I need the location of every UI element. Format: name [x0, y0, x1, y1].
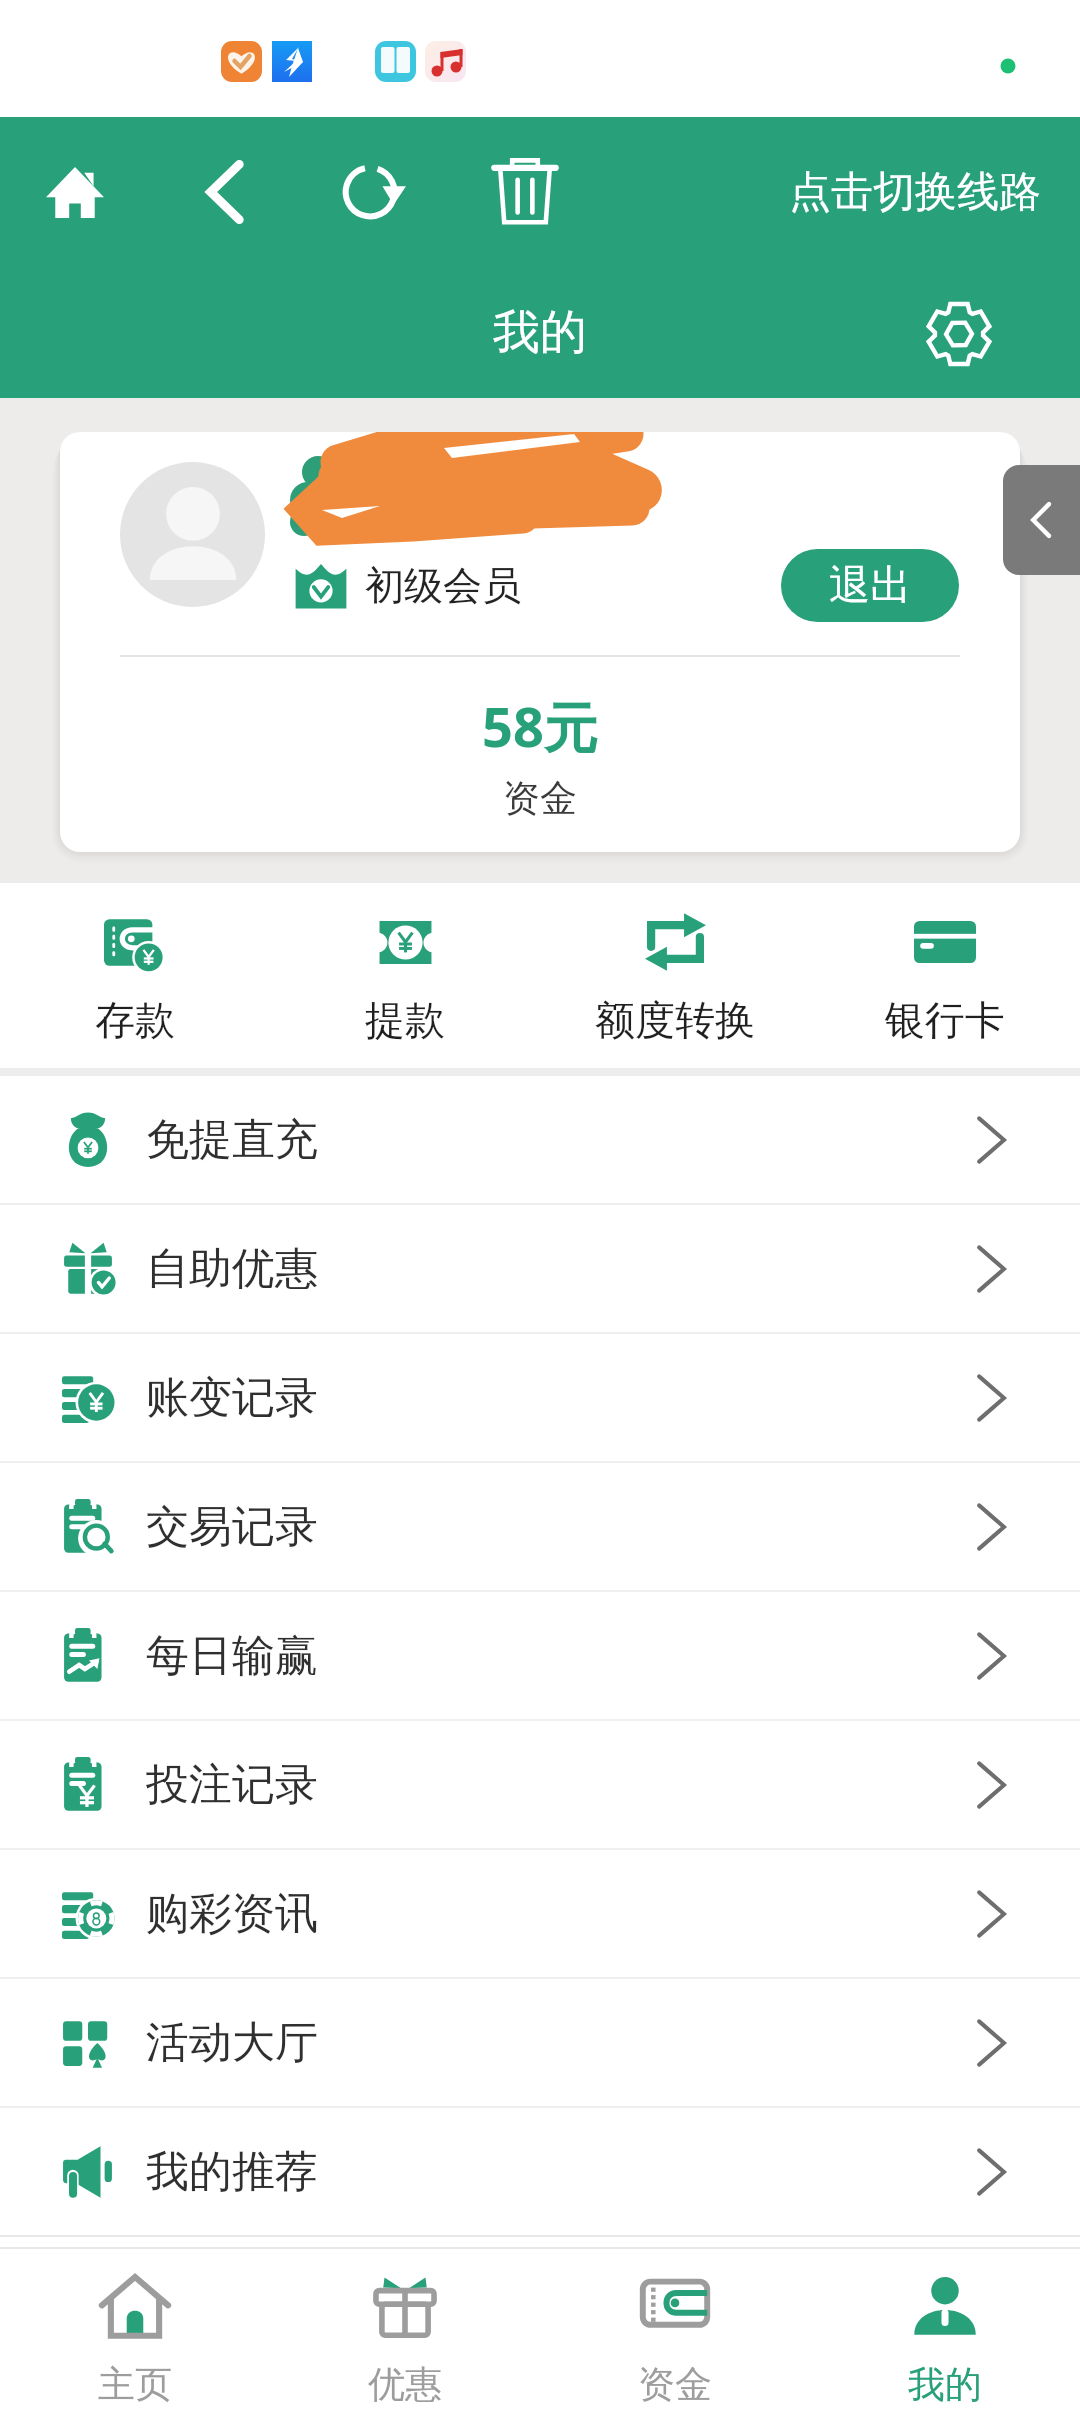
button[interactable]: 我的推荐 [0, 2108, 1080, 2235]
button[interactable]: 账变记录 [0, 1334, 1080, 1461]
button[interactable]: Home [26, 128, 124, 256]
button[interactable]: 我的 [810, 2249, 1080, 2412]
staticText: 每日输赢 [146, 1629, 318, 1683]
staticText: 提款 [365, 995, 445, 1045]
button[interactable]: Collapse [1003, 465, 1080, 575]
staticText: 主页 [98, 2361, 172, 2408]
button[interactable]: 交易记录 [0, 1463, 1080, 1590]
button[interactable]: Back [185, 125, 265, 259]
staticText: 额度转换 [595, 995, 755, 1045]
staticText: 资金 [638, 2361, 712, 2408]
button[interactable]: 退出 [781, 549, 959, 622]
staticText: 活动大厅 [146, 2016, 318, 2070]
button[interactable]: Refresh [315, 127, 435, 257]
button[interactable]: 优惠 [270, 2249, 540, 2412]
staticText: 购彩资讯 [146, 1887, 318, 1941]
staticText: 点击切换线路 [789, 166, 1041, 219]
staticText: 初级会员 [365, 561, 521, 610]
button[interactable]: 额度转换 [540, 883, 810, 1068]
button[interactable]: 存款 [0, 883, 270, 1068]
staticText: 交易记录 [146, 1500, 318, 1554]
button[interactable]: 资金 [540, 2249, 810, 2412]
staticText: 免提直充 [146, 1113, 318, 1167]
staticText: 自助优惠 [146, 1242, 318, 1296]
staticText: 投注记录 [146, 1758, 318, 1812]
staticText: 银行卡 [885, 995, 1005, 1045]
button[interactable]: 购彩资讯 [0, 1850, 1080, 1977]
staticText: 资金 [503, 775, 577, 822]
staticText: 账变记录 [146, 1371, 318, 1425]
staticText: 58元 [482, 689, 598, 763]
button[interactable]: 每日输赢 [0, 1592, 1080, 1719]
button[interactable]: 银行卡 [810, 883, 1080, 1068]
staticText: 存款 [95, 995, 175, 1045]
staticText: 优惠 [368, 2361, 442, 2408]
button[interactable]: 自助优惠 [0, 1205, 1080, 1332]
button[interactable]: 免提直充 [0, 1076, 1080, 1203]
button[interactable]: 提款 [270, 883, 540, 1068]
button[interactable]: 活动大厅 [0, 1979, 1080, 2106]
staticText: 我的 [908, 2361, 982, 2408]
button[interactable]: Delete [470, 123, 580, 261]
button[interactable]: 投注记录 [0, 1721, 1080, 1848]
button[interactable]: Settings [898, 270, 1020, 390]
staticText: 我的推荐 [146, 2145, 318, 2199]
staticText: 我的 [493, 303, 587, 362]
button[interactable]: 点击切换线路 [789, 166, 1041, 219]
staticText: 退出 [829, 560, 911, 612]
button[interactable]: 主页 [0, 2249, 270, 2412]
